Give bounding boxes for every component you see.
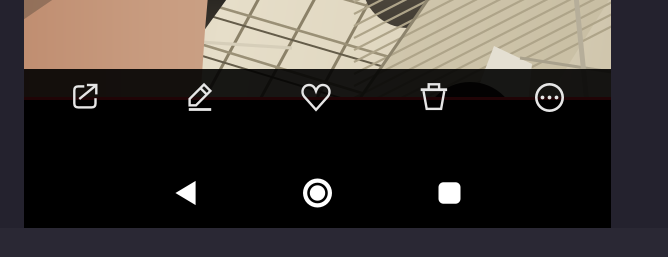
button[interactable]: Recent apps xyxy=(383,169,515,217)
button[interactable]: Favourite xyxy=(260,74,372,120)
button[interactable]: Markup xyxy=(144,74,256,120)
button[interactable]: More options xyxy=(493,74,605,120)
button[interactable]: Delete xyxy=(378,73,490,119)
button[interactable]: Share xyxy=(30,73,142,119)
button[interactable]: Home xyxy=(251,169,383,217)
button[interactable]: Back xyxy=(119,169,251,217)
